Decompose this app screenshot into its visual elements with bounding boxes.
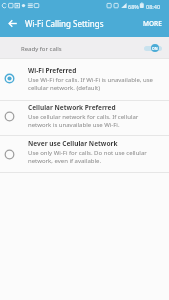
staticText: 68%	[128, 3, 139, 10]
button[interactable]: Navigate up	[0, 11, 25, 35]
staticText: Wi-Fi Calling Settings	[25, 18, 104, 29]
staticText: Use Wi-Fi for calls. If Wi-Fi is unavail…	[28, 76, 153, 92]
staticText: Use cellular network for calls. If cellu…	[28, 113, 139, 129]
staticText: Ready for calls	[21, 45, 62, 53]
button[interactable]: MORE	[136, 11, 169, 35]
staticText: Cellular Network Preferred	[28, 103, 116, 112]
button[interactable]: Ready for calls toggle	[143, 41, 163, 55]
button[interactable]: Never use Cellular Network	[0, 136, 169, 172]
staticText: ON	[152, 46, 158, 51]
button[interactable]: Cellular Network Preferred	[0, 101, 169, 135]
button[interactable]: Ready for calls	[0, 37, 169, 58]
staticText: Use only Wi-Fi for calls. Do not use cel…	[28, 149, 147, 165]
staticText: 08:40	[146, 3, 161, 10]
button[interactable]: Wi-Fi Preferred	[0, 59, 169, 100]
staticText: Wi-Fi Preferred	[28, 66, 77, 75]
staticText: Never use Cellular Network	[28, 139, 118, 148]
staticText: MORE	[143, 19, 162, 28]
